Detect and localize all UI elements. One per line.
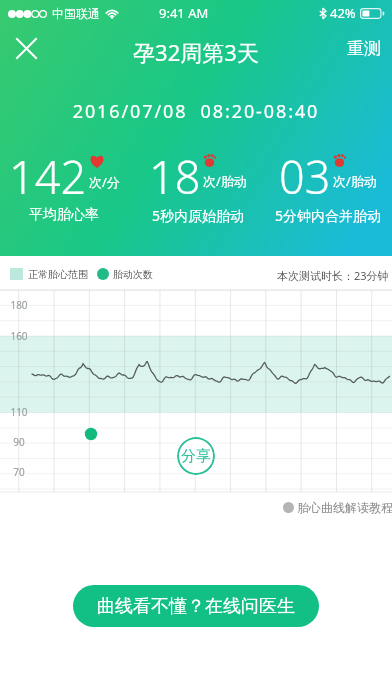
staticText: 正常胎心范围 xyxy=(28,268,88,281)
staticText: 180 xyxy=(0,298,44,312)
staticText: 42% xyxy=(330,4,356,22)
staticText: 胎动次数 xyxy=(113,268,153,281)
staticText: 9:41 AM xyxy=(159,4,209,22)
staticText: 70 xyxy=(0,465,44,479)
button[interactable]: 胎心曲线解读教程 xyxy=(283,500,392,515)
staticText: 次/胎动 xyxy=(203,172,247,190)
staticText: 分享 xyxy=(181,447,211,466)
staticText: 曲线看不懂？在线问医生 xyxy=(97,595,295,618)
staticText: 160 xyxy=(0,329,44,343)
staticText: 次/胎动 xyxy=(333,172,377,190)
staticText: 重测 xyxy=(347,38,381,59)
staticText: 5秒内原始胎动 xyxy=(78,206,318,225)
staticText: 03 xyxy=(279,146,331,207)
button[interactable]: 曲线看不懂？在线问医生 xyxy=(73,585,319,627)
staticText: 平均胎心率 xyxy=(0,206,184,224)
button[interactable]: 重测 xyxy=(336,26,392,70)
button[interactable]: Close xyxy=(3,26,49,70)
staticText: 18 xyxy=(149,146,201,207)
staticText: 5分钟内合并胎动 xyxy=(208,206,392,225)
button[interactable]: 分享 xyxy=(177,437,215,475)
staticText: 90 xyxy=(0,435,44,449)
staticText: 胎心曲线解读教程 xyxy=(297,500,392,515)
staticText: 中国联通 xyxy=(52,6,100,21)
staticText: 次/分 xyxy=(89,173,120,191)
staticText: 孕32周第3天 xyxy=(0,37,392,67)
staticText: 142 xyxy=(9,146,87,207)
staticText: 本次测试时长：23分钟 xyxy=(277,268,389,283)
staticText: 2016/07/08 08:20-08:40 xyxy=(0,99,392,124)
staticText: 110 xyxy=(0,405,44,419)
